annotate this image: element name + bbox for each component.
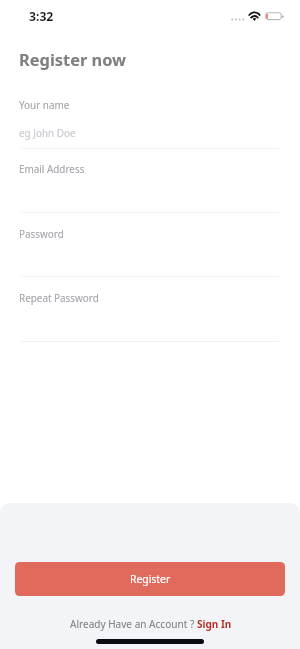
button[interactable]: Already Have an Account ? <box>1 614 300 634</box>
staticText: Register now <box>19 48 127 70</box>
staticText: Register <box>130 572 171 586</box>
button[interactable] <box>15 223 285 280</box>
staticText: Already Have an Account ? <box>70 617 197 631</box>
staticText: Sign In <box>197 617 232 631</box>
staticText: Your name <box>19 98 70 111</box>
button[interactable] <box>15 287 285 344</box>
button[interactable]: Register <box>15 562 285 596</box>
staticText: 3:32 <box>29 8 54 25</box>
other: Signal, Wi-Fi and battery status <box>228 8 288 24</box>
staticText: Email Address <box>19 162 85 175</box>
staticText: Password <box>19 227 64 240</box>
button[interactable] <box>15 158 285 215</box>
staticText: eg John Doe <box>19 126 76 139</box>
button[interactable] <box>15 94 285 151</box>
staticText: Repeat Password <box>19 291 99 304</box>
